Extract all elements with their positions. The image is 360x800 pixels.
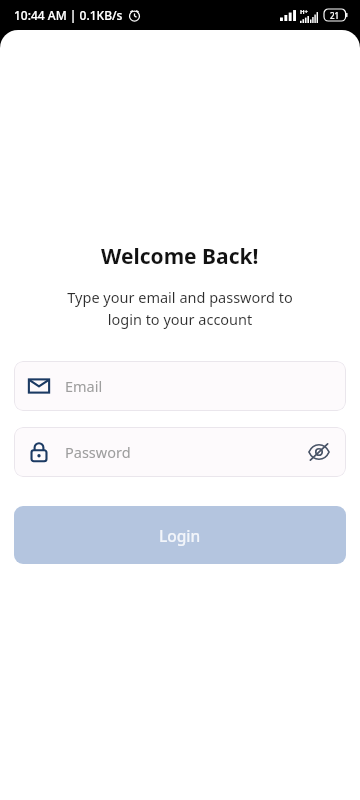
staticText: H+ (300, 8, 309, 16)
staticText: Email (65, 376, 103, 396)
button[interactable]: Email (14, 361, 346, 411)
button[interactable]: Password (14, 427, 346, 477)
staticText: 10:44 AM | 0.1KB/s (14, 7, 123, 23)
button[interactable]: Show password (306, 439, 332, 465)
other: Password (28, 441, 50, 463)
other: Email (28, 375, 50, 397)
button[interactable]: Login (14, 506, 346, 564)
staticText: Password (65, 442, 131, 462)
staticText: 21 (330, 10, 340, 21)
staticText: Welcome Back! (101, 242, 259, 271)
staticText: Type your email and password to login to… (60, 287, 300, 329)
staticText: Login (159, 525, 201, 546)
